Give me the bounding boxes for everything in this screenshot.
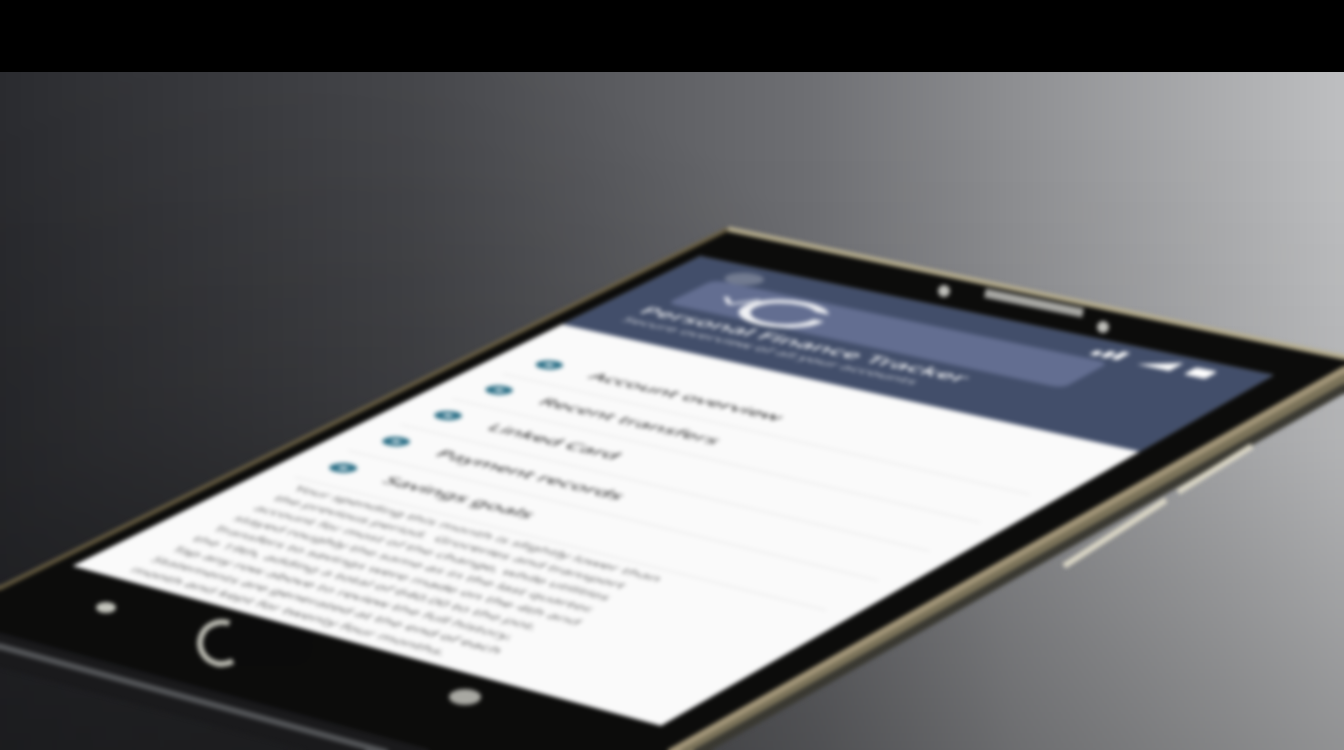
- button[interactable]: [0, 0, 1344, 750]
